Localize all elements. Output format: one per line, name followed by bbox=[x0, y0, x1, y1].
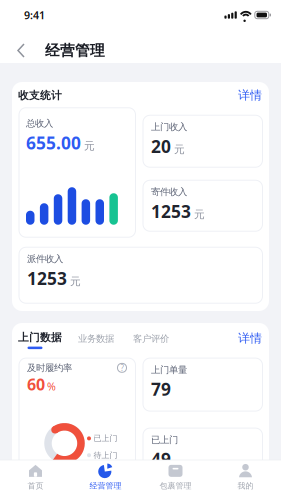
staticText: 655.00 bbox=[26, 131, 81, 154]
staticText: 60 bbox=[27, 374, 45, 395]
staticText: 1253 bbox=[151, 200, 191, 223]
staticText: 1253 bbox=[27, 267, 67, 290]
staticText: 上门收入 bbox=[151, 121, 187, 133]
button[interactable]: 首页 bbox=[0, 460, 70, 500]
staticText: 上门数据 bbox=[18, 331, 62, 344]
staticText: 已上门 bbox=[93, 433, 117, 443]
staticText: 49 bbox=[151, 448, 171, 471]
button[interactable]: 业务数据 bbox=[62, 331, 114, 344]
staticText: 业务数据 bbox=[78, 333, 114, 344]
button[interactable]: 包裹管理 bbox=[140, 460, 210, 500]
staticText: 待上门 bbox=[93, 450, 117, 460]
staticText: 元 bbox=[174, 143, 185, 156]
button[interactable]: 我的 bbox=[210, 460, 280, 500]
staticText: 上门单量 bbox=[151, 364, 187, 376]
staticText: 元 bbox=[84, 139, 95, 152]
staticText: 总收入 bbox=[26, 118, 53, 129]
staticText: 详情 bbox=[238, 88, 262, 103]
staticText: 经营管理 bbox=[45, 41, 105, 59]
staticText: 79 bbox=[151, 378, 171, 401]
button[interactable]: 详情 bbox=[238, 331, 262, 346]
staticText: 派件收入 bbox=[27, 253, 63, 265]
staticText: 收支统计 bbox=[18, 89, 62, 102]
staticText: 9:41 bbox=[24, 8, 45, 22]
staticText: 及时履约率 bbox=[27, 362, 72, 374]
staticText: ? bbox=[120, 362, 123, 373]
staticText: 已上门 bbox=[151, 434, 178, 446]
staticText: 20 bbox=[151, 135, 171, 158]
button[interactable]: 客户评价 bbox=[114, 331, 169, 344]
staticText: 寄件收入 bbox=[151, 186, 187, 198]
staticText: 首页 bbox=[27, 481, 43, 491]
button[interactable]: 经营管理 bbox=[70, 460, 140, 500]
staticText: 我的 bbox=[237, 481, 253, 491]
staticText: 详情 bbox=[238, 331, 262, 346]
button[interactable] bbox=[0, 43, 45, 58]
staticText: 元 bbox=[194, 208, 205, 221]
staticText: 包裹管理 bbox=[159, 481, 191, 491]
staticText: 元 bbox=[70, 275, 81, 288]
staticText: % bbox=[47, 379, 56, 393]
button[interactable]: 详情 bbox=[238, 88, 262, 103]
staticText: 客户评价 bbox=[133, 333, 169, 344]
staticText: 经营管理 bbox=[89, 481, 121, 491]
